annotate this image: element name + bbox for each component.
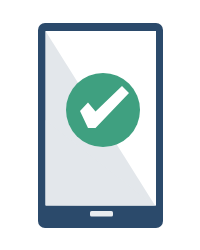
button[interactable]: Mobile phone showing a success checkmark [0, 0, 200, 250]
